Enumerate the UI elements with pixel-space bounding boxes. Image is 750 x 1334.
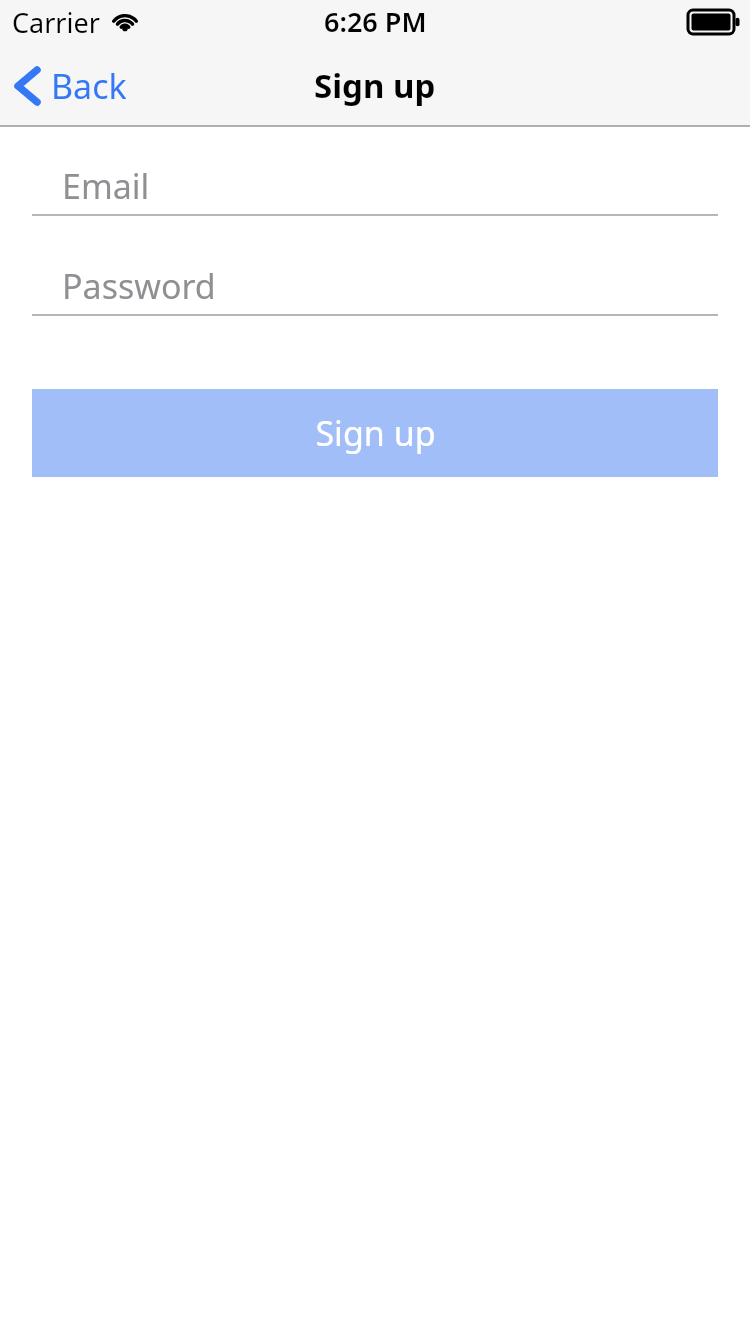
button[interactable]: Password — [32, 258, 718, 316]
staticText: 6:26 PM — [324, 3, 427, 40]
staticText: Back — [51, 63, 127, 109]
button[interactable]: Email — [32, 158, 718, 216]
other: Back — [14, 67, 40, 105]
button[interactable]: Sign up — [32, 389, 718, 477]
button[interactable]: Back — [0, 44, 145, 127]
staticText: Sign up — [314, 63, 436, 108]
staticText: Email — [62, 163, 150, 209]
staticText: Sign up — [315, 410, 436, 456]
staticText: Carrier — [12, 4, 100, 41]
staticText: Password — [62, 263, 216, 309]
